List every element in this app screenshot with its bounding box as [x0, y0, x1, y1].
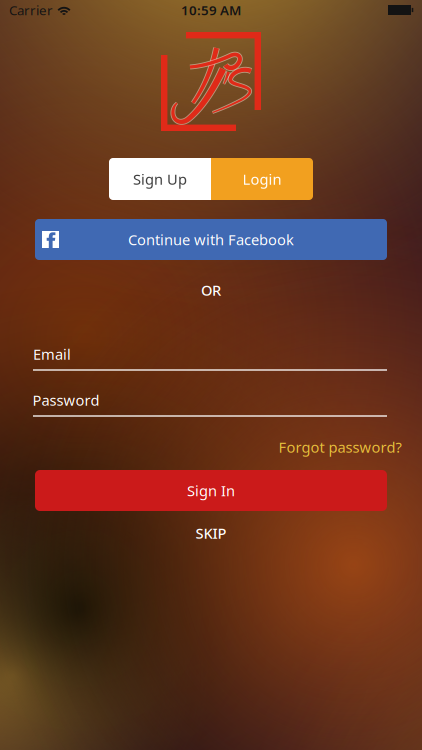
- staticText: 10:59 AM: [181, 1, 241, 19]
- button[interactable]: Continue with Facebook: [35, 219, 387, 260]
- staticText: Password: [32, 390, 99, 410]
- staticText: SKIP: [195, 523, 226, 543]
- button[interactable]: Login: [211, 158, 313, 200]
- button[interactable]: Forgot password?: [278, 437, 401, 457]
- staticText: Continue with Facebook: [128, 230, 294, 249]
- button[interactable]: SKIP: [189, 517, 232, 549]
- staticText: Sign In: [187, 481, 235, 500]
- staticText: Email: [33, 344, 71, 364]
- staticText: Sign Up: [133, 169, 187, 189]
- staticText: OR: [201, 280, 221, 300]
- staticText: Login: [242, 169, 281, 189]
- button[interactable]: Sign In: [35, 470, 387, 511]
- button[interactable]: Sign Up: [109, 158, 211, 200]
- staticText: Carrier: [9, 1, 53, 19]
- staticText: Forgot password?: [278, 437, 401, 457]
